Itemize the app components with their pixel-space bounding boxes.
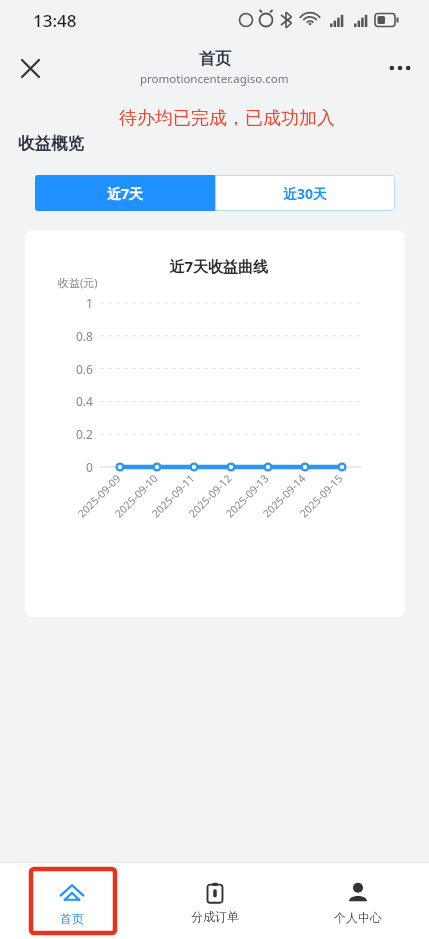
staticText: 待办均已完成，已成功加入: [119, 107, 335, 130]
staticText: 分成订单: [191, 909, 239, 924]
button[interactable]: 个人中心: [286, 863, 429, 939]
staticText: 收益概览: [18, 133, 84, 154]
button[interactable]: 近30天: [215, 175, 395, 211]
button[interactable]: Close: [10, 48, 50, 88]
button[interactable]: 近7天: [35, 175, 215, 211]
button[interactable]: More options: [379, 47, 421, 89]
button[interactable]: 分成订单: [143, 863, 286, 939]
staticText: 近30天: [283, 184, 328, 203]
staticText: 13:48: [33, 9, 77, 32]
staticText: 近7天: [107, 184, 144, 203]
staticText: promotioncenter.agiso.com: [140, 71, 289, 87]
button[interactable]: 首页: [0, 863, 143, 939]
staticText: 首页: [60, 911, 84, 926]
staticText: 首页: [199, 49, 231, 69]
staticText: 个人中心: [334, 910, 382, 925]
